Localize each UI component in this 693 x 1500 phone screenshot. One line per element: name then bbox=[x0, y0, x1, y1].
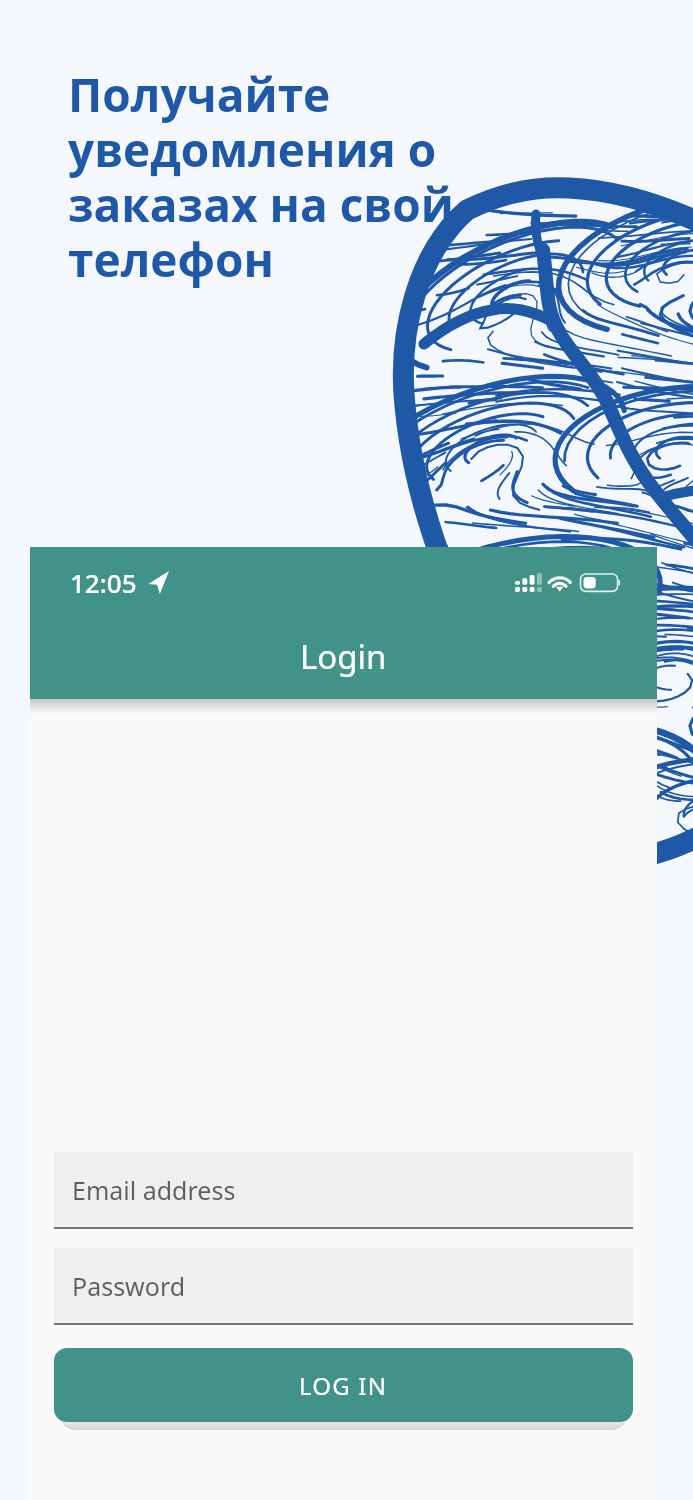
staticText: Получайте уведомления о заказах на свой … bbox=[68, 63, 454, 290]
staticText: Email address bbox=[72, 1173, 236, 1207]
staticText: Password bbox=[72, 1269, 186, 1303]
staticText: LOG IN bbox=[299, 1369, 388, 1402]
staticText: 12:05 bbox=[70, 565, 137, 600]
button[interactable]: LOG IN bbox=[54, 1348, 633, 1422]
button[interactable]: Email address bbox=[54, 1152, 633, 1229]
button[interactable]: Password bbox=[54, 1248, 633, 1325]
staticText: Login bbox=[300, 634, 387, 679]
